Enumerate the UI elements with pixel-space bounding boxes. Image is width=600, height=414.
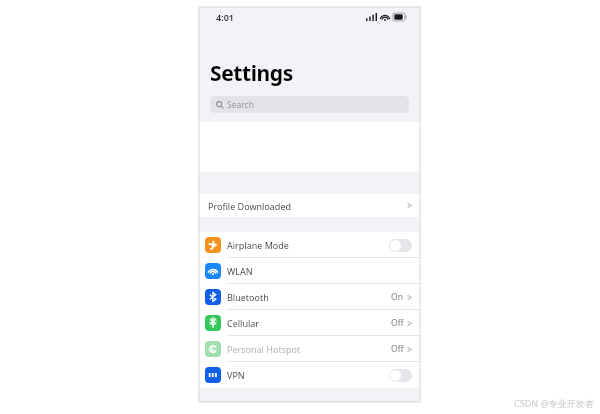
staticText: Search xyxy=(227,99,254,111)
button[interactable]: Toggle off xyxy=(389,369,412,382)
button[interactable]: WLAN xyxy=(199,258,420,284)
staticText: Personal Hotspot xyxy=(227,343,301,355)
staticText: Airplane Mode xyxy=(227,239,289,251)
button[interactable]: Profile Downloaded xyxy=(199,194,420,217)
staticText: VPN xyxy=(227,369,245,381)
button[interactable]: Personal Hotspot xyxy=(199,336,420,362)
button[interactable]: VPN xyxy=(199,362,420,388)
staticText: Bluetooth xyxy=(227,291,269,303)
staticText: Cellular xyxy=(227,317,260,329)
button[interactable]: Search xyxy=(210,96,409,113)
button[interactable]: Airplane Mode xyxy=(199,232,420,258)
button[interactable]: Toggle off xyxy=(389,239,412,252)
staticText: CSDN @专业开发者 xyxy=(514,397,594,409)
staticText: Profile Downloaded xyxy=(208,200,292,212)
staticText: 4:01 xyxy=(216,11,234,23)
button[interactable]: Bluetooth xyxy=(199,284,420,310)
staticText: Off xyxy=(391,317,404,329)
staticText: On xyxy=(391,291,404,303)
button[interactable]: Cellular xyxy=(199,310,420,336)
staticText: Settings xyxy=(210,59,293,88)
staticText: WLAN xyxy=(227,265,253,277)
staticText: Off xyxy=(391,343,404,355)
